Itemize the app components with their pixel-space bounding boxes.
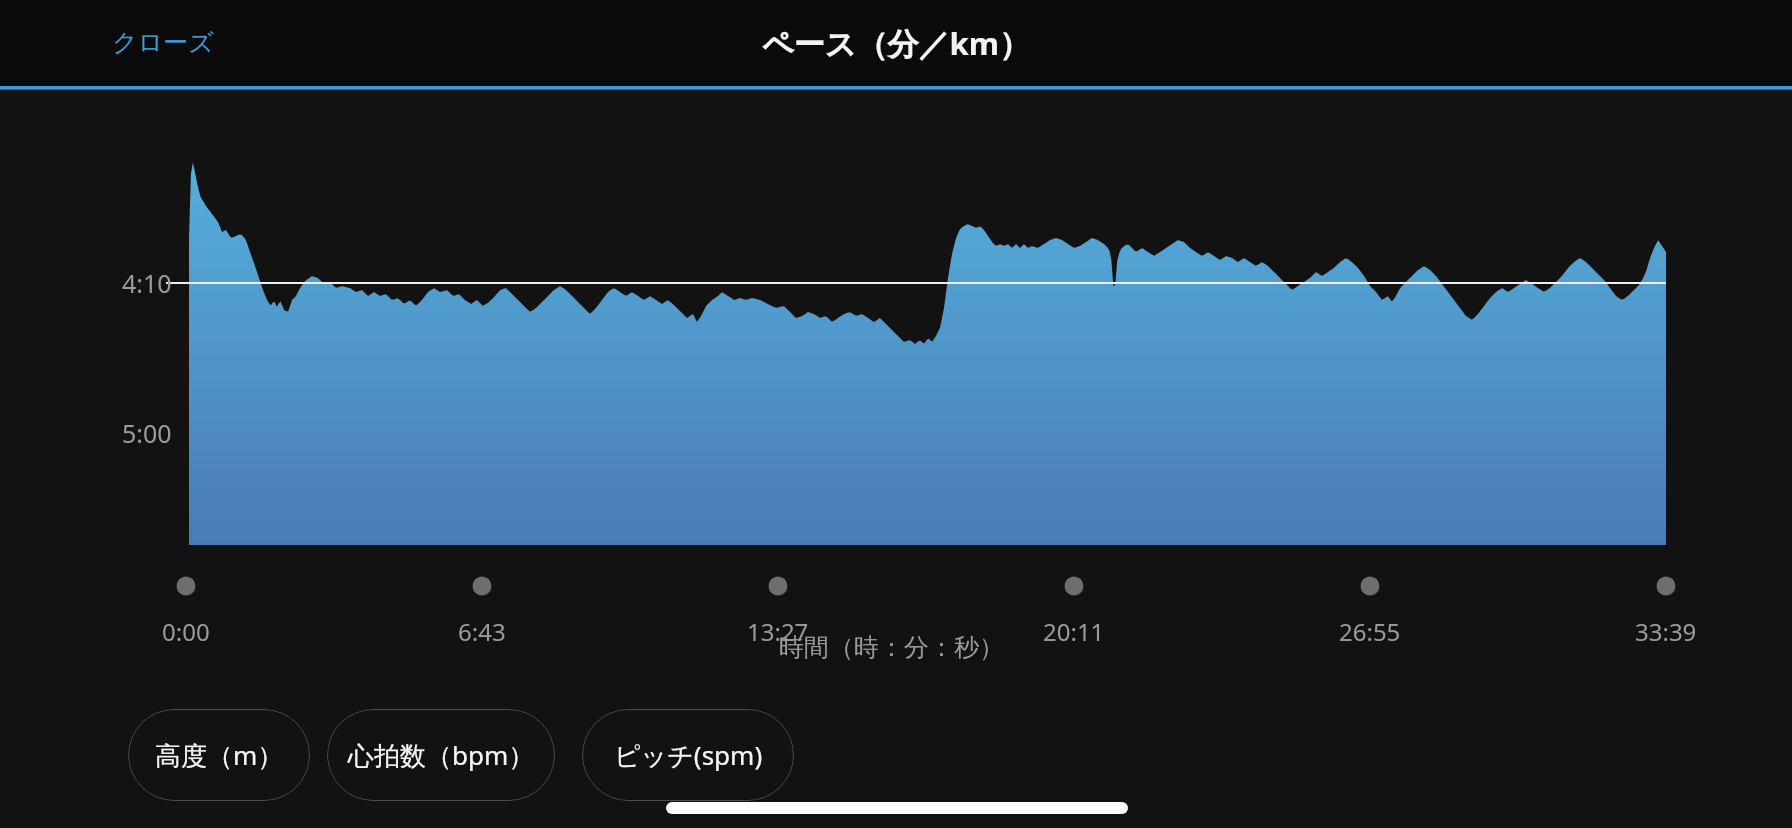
staticText: 13:27 [747, 615, 809, 648]
other: Home indicator [666, 802, 1128, 814]
button[interactable]: 心拍数（bpm） [327, 709, 555, 801]
button[interactable]: 高度（m） [128, 709, 310, 801]
staticText: 33:39 [1635, 615, 1697, 648]
staticText: ペース（分／km） [762, 22, 1030, 64]
staticText: 5:00 [122, 416, 172, 450]
staticText: 時間（時：分：秒） [779, 632, 1004, 663]
button[interactable]: クローズ [112, 12, 234, 72]
staticText: ピッチ(spm) [614, 737, 763, 773]
staticText: クローズ [112, 27, 214, 58]
staticText: 0:00 [162, 615, 210, 648]
staticText: 高度（m） [155, 737, 284, 773]
staticText: 4:10 [122, 266, 172, 300]
button[interactable]: ピッチ(spm) [582, 709, 794, 801]
staticText: 26:55 [1339, 615, 1401, 648]
staticText: 20:11 [1043, 615, 1105, 648]
staticText: 心拍数（bpm） [348, 737, 535, 773]
staticText: 6:43 [458, 615, 506, 648]
